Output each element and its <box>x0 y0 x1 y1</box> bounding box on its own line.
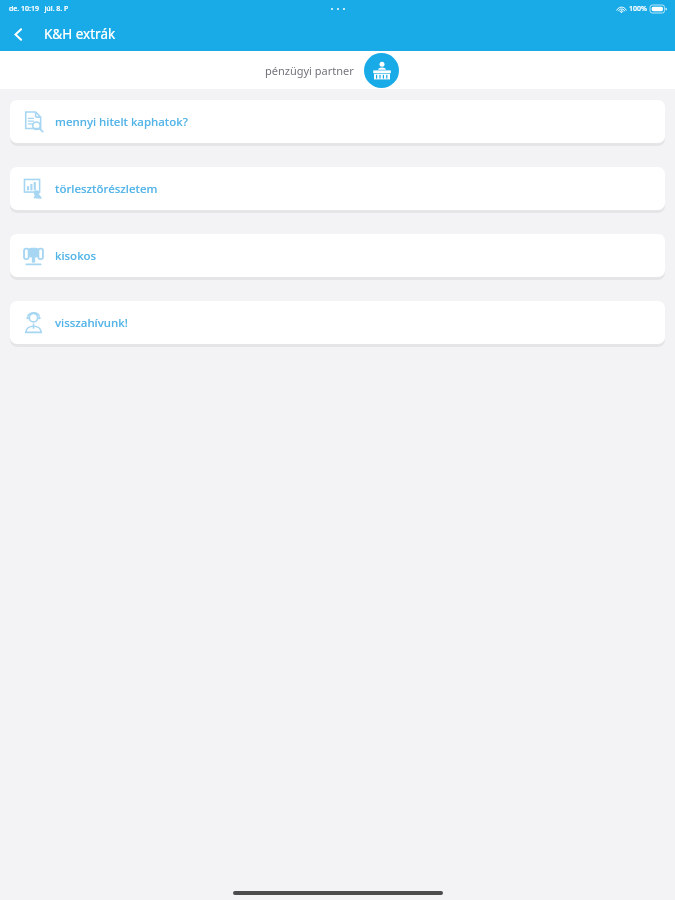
staticText: visszahívunk! <box>55 315 128 331</box>
button[interactable]: kisokos <box>10 234 665 277</box>
button[interactable]: Back <box>3 19 33 49</box>
staticText: 100% <box>629 4 647 14</box>
staticText: K&H extrák <box>44 25 116 43</box>
staticText: törlesztőrészletem <box>55 181 158 197</box>
staticText: de. 10:19 júl. 8. P <box>9 4 69 14</box>
staticText: kisokos <box>55 248 97 264</box>
button[interactable]: visszahívunk! <box>10 301 665 344</box>
button[interactable]: pénzügyi partner <box>364 53 399 88</box>
button[interactable]: törlesztőrészletem <box>10 167 665 210</box>
button[interactable]: mennyi hitelt kaphatok? <box>10 100 665 143</box>
staticText: mennyi hitelt kaphatok? <box>55 114 188 130</box>
staticText: pénzügyi partner <box>265 63 354 78</box>
